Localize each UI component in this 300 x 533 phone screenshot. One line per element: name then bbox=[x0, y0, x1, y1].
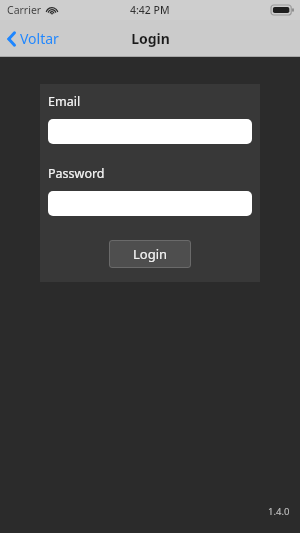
button[interactable] bbox=[48, 119, 252, 144]
staticText: Email bbox=[48, 93, 81, 110]
staticText: Carrier bbox=[7, 3, 42, 17]
staticText: Password bbox=[48, 165, 105, 182]
button[interactable]: Login bbox=[109, 240, 191, 268]
button[interactable]: Voltar bbox=[0, 25, 69, 52]
staticText: Login bbox=[133, 245, 168, 263]
staticText: 1.4.0 bbox=[268, 505, 290, 518]
staticText: 4:42 PM bbox=[130, 3, 170, 17]
button[interactable] bbox=[48, 191, 252, 216]
staticText: Voltar bbox=[20, 29, 59, 48]
staticText: Login bbox=[131, 29, 170, 48]
